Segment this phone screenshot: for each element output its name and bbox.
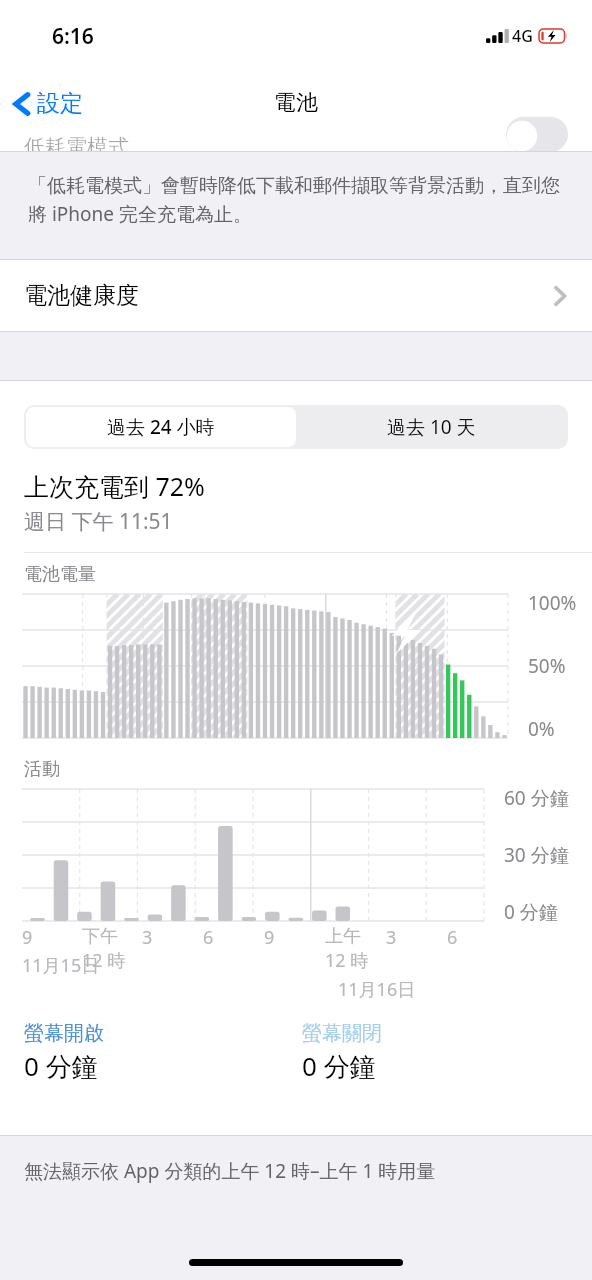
staticText: 無法顯示依 App 分類的上午 12 時–上午 1 時用量 <box>24 1158 436 1184</box>
staticText: 0 分鐘 <box>504 899 558 925</box>
staticText: 4G <box>512 25 533 47</box>
staticText: 0 分鐘 <box>24 1048 98 1084</box>
staticText: 上午 12 時 <box>325 925 369 972</box>
staticText: 30 分鐘 <box>504 842 569 868</box>
staticText: 11月16日 <box>338 977 416 1002</box>
staticText: 過去 10 天 <box>387 414 476 440</box>
staticText: 9 <box>264 925 275 950</box>
staticText: 電池電量 <box>24 563 96 586</box>
staticText: 電池 <box>274 89 318 117</box>
staticText: 6:16 <box>52 22 94 51</box>
staticText: 60 分鐘 <box>504 785 569 811</box>
staticText: 低耗電模式 <box>24 134 129 152</box>
staticText: 上次充電到 72% <box>24 469 205 503</box>
staticText: 3 <box>386 925 397 950</box>
staticText: 活動 <box>24 758 60 781</box>
other: 電池健康度 <box>554 285 566 307</box>
button[interactable]: 電池健康度 <box>0 260 592 331</box>
staticText: 0% <box>528 716 555 742</box>
staticText: 「低耗電模式」會暫時降低下載和郵件擷取等背景活動，直到您將 iPhone 完全充… <box>28 174 562 227</box>
staticText: 螢幕開啟 <box>24 1021 104 1046</box>
staticText: 6 <box>203 925 214 950</box>
staticText: 50% <box>528 653 566 679</box>
staticText: 下午 12 時 <box>82 925 126 972</box>
staticText: 電池健康度 <box>24 281 139 310</box>
staticText: 9 <box>22 925 33 950</box>
staticText: 0 分鐘 <box>302 1048 376 1084</box>
staticText: 6 <box>447 925 458 950</box>
staticText: 螢幕關閉 <box>302 1021 382 1046</box>
staticText: 設定 <box>37 89 83 118</box>
button[interactable]: 設定 <box>0 83 97 124</box>
button[interactable]: 過去 24 小時 <box>26 407 296 447</box>
staticText: 週日 下午 11:51 <box>24 507 173 536</box>
button[interactable]: 過去 10 天 <box>296 407 566 447</box>
staticText: 3 <box>142 925 153 950</box>
staticText: 100% <box>528 590 577 616</box>
staticText: 11月15日 <box>22 953 100 978</box>
staticText: 過去 24 小時 <box>107 414 215 440</box>
